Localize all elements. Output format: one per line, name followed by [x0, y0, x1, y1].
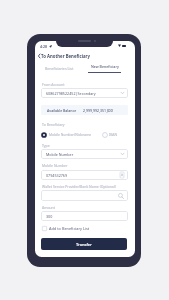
staticText: 4:28	[40, 44, 48, 49]
staticText: 300	[46, 214, 53, 219]
button[interactable]: Add to Beneficiary List	[42, 226, 90, 231]
button[interactable]: Transfer	[41, 238, 127, 250]
button[interactable]	[41, 190, 128, 201]
button[interactable]: New Beneficiary	[88, 64, 121, 73]
staticText: Wallet Service Provider/Bank Name (Optio…	[42, 184, 116, 189]
staticText: Beneficiaries List	[45, 66, 74, 71]
staticText: New Beneficiary	[91, 64, 119, 69]
staticText: 0794532769	[46, 173, 68, 178]
staticText: 60862798522452|Secondary	[46, 91, 96, 96]
button[interactable]: Back	[36, 52, 90, 60]
staticText: Mobile Number	[46, 152, 74, 157]
button[interactable]: Mobile Number	[41, 149, 128, 159]
staticText: 2,999,992,351 JOD	[83, 108, 114, 113]
staticText: Amount	[42, 205, 55, 210]
staticText: Transfer	[76, 242, 92, 247]
button[interactable]: IBAN	[102, 131, 118, 138]
staticText: To Another Beneficiary	[41, 53, 90, 59]
button[interactable]: Beneficiaries List	[37, 64, 81, 73]
button[interactable]: Mobile Number/Nickname	[41, 131, 92, 138]
staticText: Available Balance	[47, 108, 77, 113]
staticText: Mobile Number	[42, 163, 68, 168]
button[interactable]: 0794532769	[41, 170, 128, 180]
staticText: IBAN	[109, 132, 118, 137]
other: Back	[36, 52, 41, 60]
staticText: To Beneficiary	[42, 122, 65, 127]
button[interactable]: 300	[41, 211, 128, 221]
staticText: From Account	[42, 82, 65, 87]
staticText: Mobile Number/Nickname	[49, 132, 92, 137]
button[interactable]: 60862798522452|Secondary	[41, 88, 128, 98]
staticText: Type	[42, 143, 50, 148]
staticText: Add to Beneficiary List	[49, 226, 90, 231]
